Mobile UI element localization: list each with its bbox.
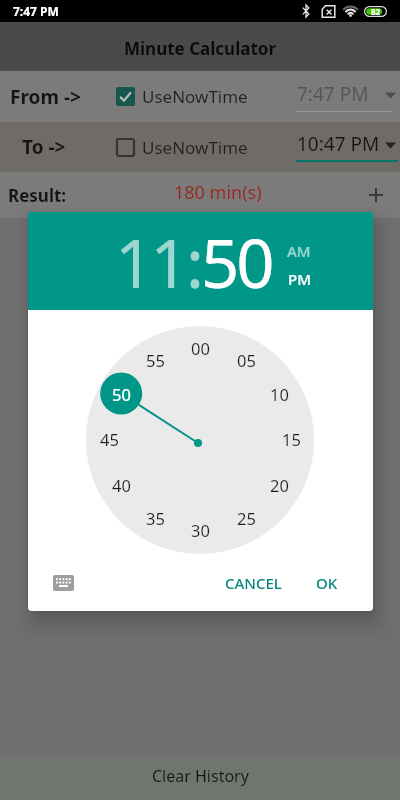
button[interactable] [53,575,74,591]
staticText: UseNowTime [142,85,248,108]
button[interactable] [116,87,135,106]
button[interactable]: Clear History [0,755,400,800]
button[interactable]: 7:47 PM [296,71,400,122]
staticText: To -> [22,134,66,160]
button[interactable]: OK [308,565,346,601]
staticText: 82 [371,6,381,17]
staticText: 20 [270,474,289,496]
button[interactable]: PM [288,269,311,289]
staticText: 15 [282,428,301,450]
staticText: CANCEL [225,573,282,593]
button[interactable]: AM [287,241,311,261]
staticText: 50 [201,216,272,307]
staticText: 05 [237,349,256,371]
staticText: 10:47 PM [297,131,380,157]
staticText: Minute Calculator [124,37,276,60]
staticText: 180 min(s) [174,180,262,205]
staticText: : [186,216,201,307]
staticText: 11 [115,216,186,307]
staticText: 7:47 PM [13,3,59,19]
staticText: Result: [8,184,67,207]
staticText: 55 [146,349,165,371]
staticText: UseNowTime [142,136,248,159]
button[interactable]: CANCEL [217,565,290,601]
staticText: 35 [146,507,165,529]
staticText: 30 [191,519,210,541]
staticText: Clear History [152,765,249,787]
staticText: 45 [100,428,119,450]
staticText: OK [316,573,338,593]
staticText: 10 [270,383,289,405]
staticText: 00 [191,337,210,359]
button[interactable]: UseNowTime [116,85,248,108]
button[interactable]: 10:47 PM [296,122,400,172]
staticText: 50 [112,383,131,405]
staticText: 7:47 PM [297,81,369,107]
button[interactable]: UseNowTime [116,136,248,159]
staticText: From -> [10,84,81,110]
button[interactable] [364,183,388,207]
button[interactable] [116,138,135,157]
staticText: 25 [237,507,256,529]
staticText: 40 [112,474,131,496]
